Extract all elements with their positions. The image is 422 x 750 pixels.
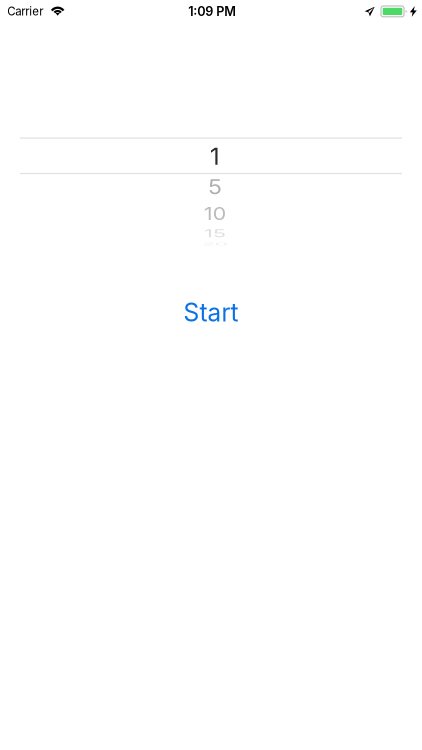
- staticText: 10: [202, 199, 227, 228]
- button[interactable]: 10: [24, 201, 406, 225]
- staticText: 1:09 PM: [188, 4, 236, 19]
- staticText: Start: [183, 298, 238, 327]
- button[interactable]: 5: [24, 172, 406, 202]
- button[interactable]: 1: [24, 138, 406, 173]
- button[interactable]: Start: [131, 290, 291, 334]
- staticText: 5: [208, 173, 222, 202]
- staticText: Carrier: [7, 4, 43, 18]
- staticText: 15: [203, 219, 227, 248]
- staticText: 1: [210, 141, 220, 170]
- staticText: 20: [200, 230, 229, 259]
